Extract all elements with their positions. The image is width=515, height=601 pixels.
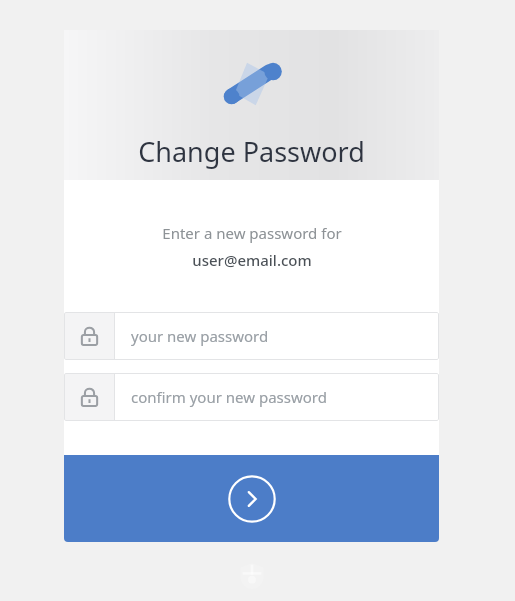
button[interactable]: Submit new password: [64, 455, 439, 542]
staticText: Change Password: [138, 133, 365, 170]
button[interactable]: confirm your new password: [64, 373, 439, 421]
staticText: user@email.com: [192, 250, 312, 270]
button[interactable]: your new password: [64, 312, 439, 360]
staticText: your new password: [131, 326, 269, 346]
staticText: Enter a new password for: [162, 223, 342, 243]
staticText: confirm your new password: [131, 387, 327, 407]
